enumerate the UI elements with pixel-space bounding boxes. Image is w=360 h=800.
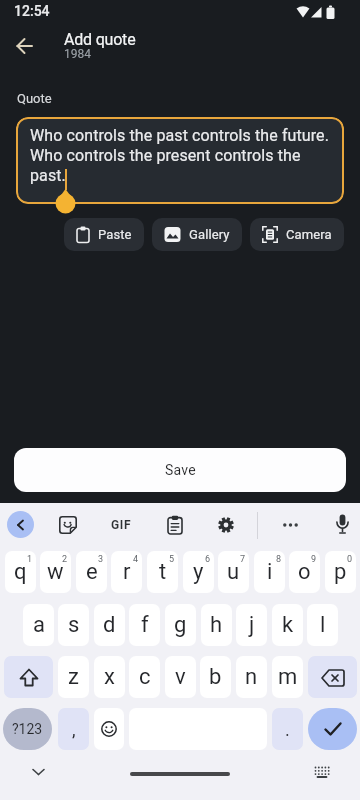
- button[interactable]: r: [111, 551, 142, 593]
- staticText: GIF: [111, 518, 132, 532]
- button[interactable]: c: [129, 656, 160, 698]
- button[interactable]: h: [201, 604, 232, 646]
- button[interactable]: Paste: [64, 218, 144, 251]
- button[interactable]: [308, 708, 357, 750]
- staticText: f: [141, 612, 149, 638]
- staticText: i: [267, 559, 273, 585]
- staticText: j: [249, 612, 255, 638]
- staticText: 6: [205, 554, 211, 565]
- button[interactable]: l: [307, 604, 338, 646]
- staticText: Who controls the past controls the futur…: [30, 126, 330, 185]
- staticText: l: [320, 612, 326, 638]
- staticText: h: [210, 612, 223, 638]
- staticText: a: [33, 612, 45, 638]
- staticText: ?123: [12, 721, 43, 737]
- staticText: 8: [276, 554, 282, 565]
- button[interactable]: [94, 708, 124, 750]
- staticText: Paste: [98, 227, 132, 242]
- button[interactable]: t: [147, 551, 178, 593]
- button[interactable]: a: [23, 604, 54, 646]
- button[interactable]: j: [236, 604, 267, 646]
- button[interactable]: x: [94, 656, 125, 698]
- button[interactable]: o: [289, 551, 320, 593]
- staticText: y: [193, 559, 204, 585]
- staticText: n: [245, 664, 258, 690]
- staticText: s: [68, 612, 80, 638]
- button[interactable]: k: [272, 604, 303, 646]
- button[interactable]: e: [76, 551, 107, 593]
- button[interactable]: .: [272, 708, 303, 750]
- staticText: g: [174, 612, 187, 638]
- staticText: Camera: [286, 227, 332, 242]
- button[interactable]: Save: [14, 448, 346, 492]
- staticText: Quote: [17, 91, 52, 106]
- button[interactable]: Gallery: [152, 218, 242, 251]
- button[interactable]: [8, 30, 40, 62]
- button[interactable]: f: [129, 604, 160, 646]
- button[interactable]: s: [58, 604, 89, 646]
- staticText: .: [285, 719, 290, 740]
- staticText: u: [227, 559, 240, 585]
- staticText: b: [209, 664, 222, 690]
- staticText: Add quote: [64, 30, 136, 49]
- button[interactable]: u: [218, 551, 249, 593]
- staticText: t: [159, 559, 167, 585]
- staticText: 3: [98, 554, 104, 565]
- button[interactable]: g: [165, 604, 196, 646]
- staticText: 4: [133, 554, 139, 565]
- staticText: 1: [27, 554, 33, 565]
- staticText: d: [103, 612, 116, 638]
- staticText: 7: [240, 554, 246, 565]
- staticText: 5: [169, 554, 175, 565]
- staticText: r: [123, 559, 131, 585]
- button[interactable]: n: [236, 656, 267, 698]
- button[interactable]: y: [183, 551, 214, 593]
- staticText: v: [175, 664, 186, 690]
- button[interactable]: [7, 511, 34, 538]
- staticText: m: [278, 664, 298, 690]
- button[interactable]: z: [58, 656, 89, 698]
- staticText: 1984: [64, 47, 91, 61]
- staticText: ,: [72, 719, 76, 740]
- staticText: w: [47, 559, 64, 585]
- button[interactable]: [4, 656, 53, 698]
- staticText: 12:54: [14, 3, 50, 19]
- button[interactable]: ?123: [3, 708, 52, 750]
- staticText: e: [86, 559, 98, 585]
- staticText: c: [139, 664, 151, 690]
- button[interactable]: m: [272, 656, 303, 698]
- button[interactable]: w: [40, 551, 71, 593]
- button[interactable]: i: [254, 551, 285, 593]
- button[interactable]: b: [200, 656, 231, 698]
- button[interactable]: [308, 656, 357, 698]
- button[interactable]: d: [94, 604, 125, 646]
- staticText: x: [104, 664, 115, 690]
- button[interactable]: v: [165, 656, 196, 698]
- button[interactable]: ,: [58, 708, 89, 750]
- staticText: k: [282, 612, 294, 638]
- staticText: 0: [347, 554, 353, 565]
- staticText: p: [334, 559, 347, 585]
- staticText: Gallery: [189, 227, 230, 242]
- button[interactable]: Camera: [250, 218, 344, 251]
- staticText: Save: [165, 462, 196, 478]
- staticText: z: [68, 664, 79, 690]
- staticText: q: [14, 559, 27, 585]
- button[interactable]: q: [5, 551, 36, 593]
- button[interactable]: p: [325, 551, 356, 593]
- staticText: o: [298, 559, 311, 585]
- staticText: 2: [62, 554, 68, 565]
- staticText: 9: [311, 554, 317, 565]
